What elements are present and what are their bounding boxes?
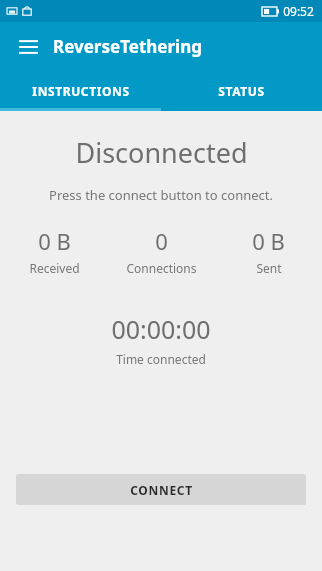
- staticText: Connections: [126, 260, 197, 276]
- button[interactable]: INSTRUCTIONS: [0, 71, 161, 111]
- staticText: Time connected: [116, 351, 206, 367]
- staticText: 0 B: [252, 226, 285, 256]
- staticText: ReverseTethering: [53, 35, 202, 58]
- staticText: 0: [155, 226, 168, 256]
- button[interactable]: Open navigation menu: [13, 32, 43, 62]
- staticText: 0 B: [38, 226, 71, 256]
- staticText: Disconnected: [75, 134, 248, 171]
- staticText: CONNECT: [130, 482, 193, 498]
- staticText: Sent: [256, 260, 282, 276]
- staticText: 09:52: [283, 3, 314, 19]
- staticText: STATUS: [218, 83, 265, 99]
- button[interactable]: STATUS: [161, 71, 322, 111]
- staticText: Press the connect button to connect.: [49, 186, 273, 204]
- staticText: 00:00:00: [111, 312, 211, 346]
- staticText: INSTRUCTIONS: [32, 83, 130, 99]
- button[interactable]: CONNECT: [16, 474, 306, 505]
- staticText: Received: [29, 260, 80, 276]
